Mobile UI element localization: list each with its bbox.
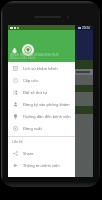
staticText: 20:34 — [82, 26, 90, 30]
button[interactable]: Share — [8, 147, 75, 159]
button[interactable]: Lịch sử khám bệnh — [8, 62, 75, 74]
button[interactable]: Cấp cứu — [8, 74, 75, 86]
staticText: Đặt số thứ tự — [23, 90, 48, 95]
staticText: Liên hệ — [12, 140, 23, 144]
button[interactable]: Đăng ký vào phòng khám — [8, 98, 75, 110]
staticText: Đăng xuất — [23, 126, 42, 131]
button[interactable]: Hướng dẫn đến bệnh viện — [8, 110, 75, 122]
staticText: Share — [23, 151, 34, 156]
staticText: Đăng ký vào phòng khám — [23, 102, 70, 107]
button[interactable]: Đăng xuất — [8, 122, 75, 134]
staticText: BỆNH VIỆN ĐA KHOA KHU VỰC — [10, 52, 60, 57]
staticText: Khám chữa bệnh — [10, 56, 36, 60]
button[interactable]: Đặt số thứ tự — [8, 86, 75, 98]
staticText: Thông tin bệnh viện — [23, 163, 60, 168]
staticText: Hướng dẫn đến bệnh viện — [23, 114, 71, 119]
button[interactable]: Thông tin bệnh viện — [8, 159, 75, 171]
staticText: Lịch sử khám bệnh — [23, 66, 58, 71]
staticText: Cấp cứu — [23, 78, 38, 83]
